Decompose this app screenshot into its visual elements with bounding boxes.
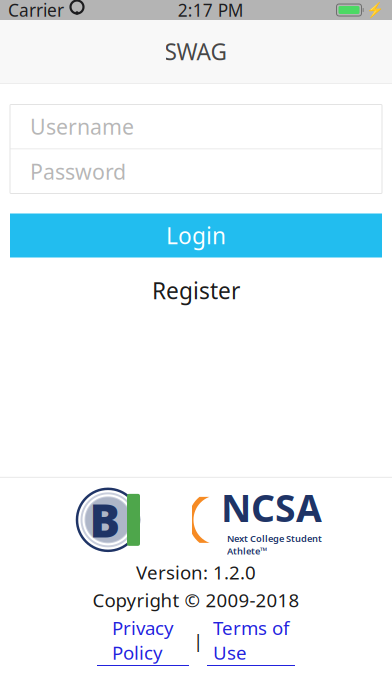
staticText: 2:17 PM <box>178 0 244 21</box>
button[interactable]: Password <box>10 149 382 193</box>
staticText: Username <box>30 112 134 141</box>
staticText: NCSA <box>221 483 322 532</box>
button[interactable]: Register <box>138 269 254 312</box>
staticText: B <box>89 490 120 550</box>
button[interactable]: Username <box>10 104 382 148</box>
staticText: ⚡ <box>366 2 384 18</box>
staticText: | <box>193 628 203 653</box>
button[interactable]: Privacy Policy <box>97 615 189 666</box>
staticText: Password <box>30 157 126 186</box>
staticText: SWAG <box>164 36 227 66</box>
staticText: Register <box>152 275 240 306</box>
staticText: Terms of Use <box>213 615 289 665</box>
button[interactable]: Login <box>10 213 382 257</box>
staticText: Copyright © 2009-2018 <box>92 588 299 612</box>
staticText: Version: 1.2.0 <box>136 560 256 585</box>
staticText: Next College Student Athlete™ <box>227 532 322 557</box>
button[interactable]: Terms of Use <box>207 615 295 666</box>
staticText: Login <box>166 220 226 250</box>
staticText: Privacy Policy <box>112 615 174 665</box>
staticText: Carrier <box>8 0 64 21</box>
